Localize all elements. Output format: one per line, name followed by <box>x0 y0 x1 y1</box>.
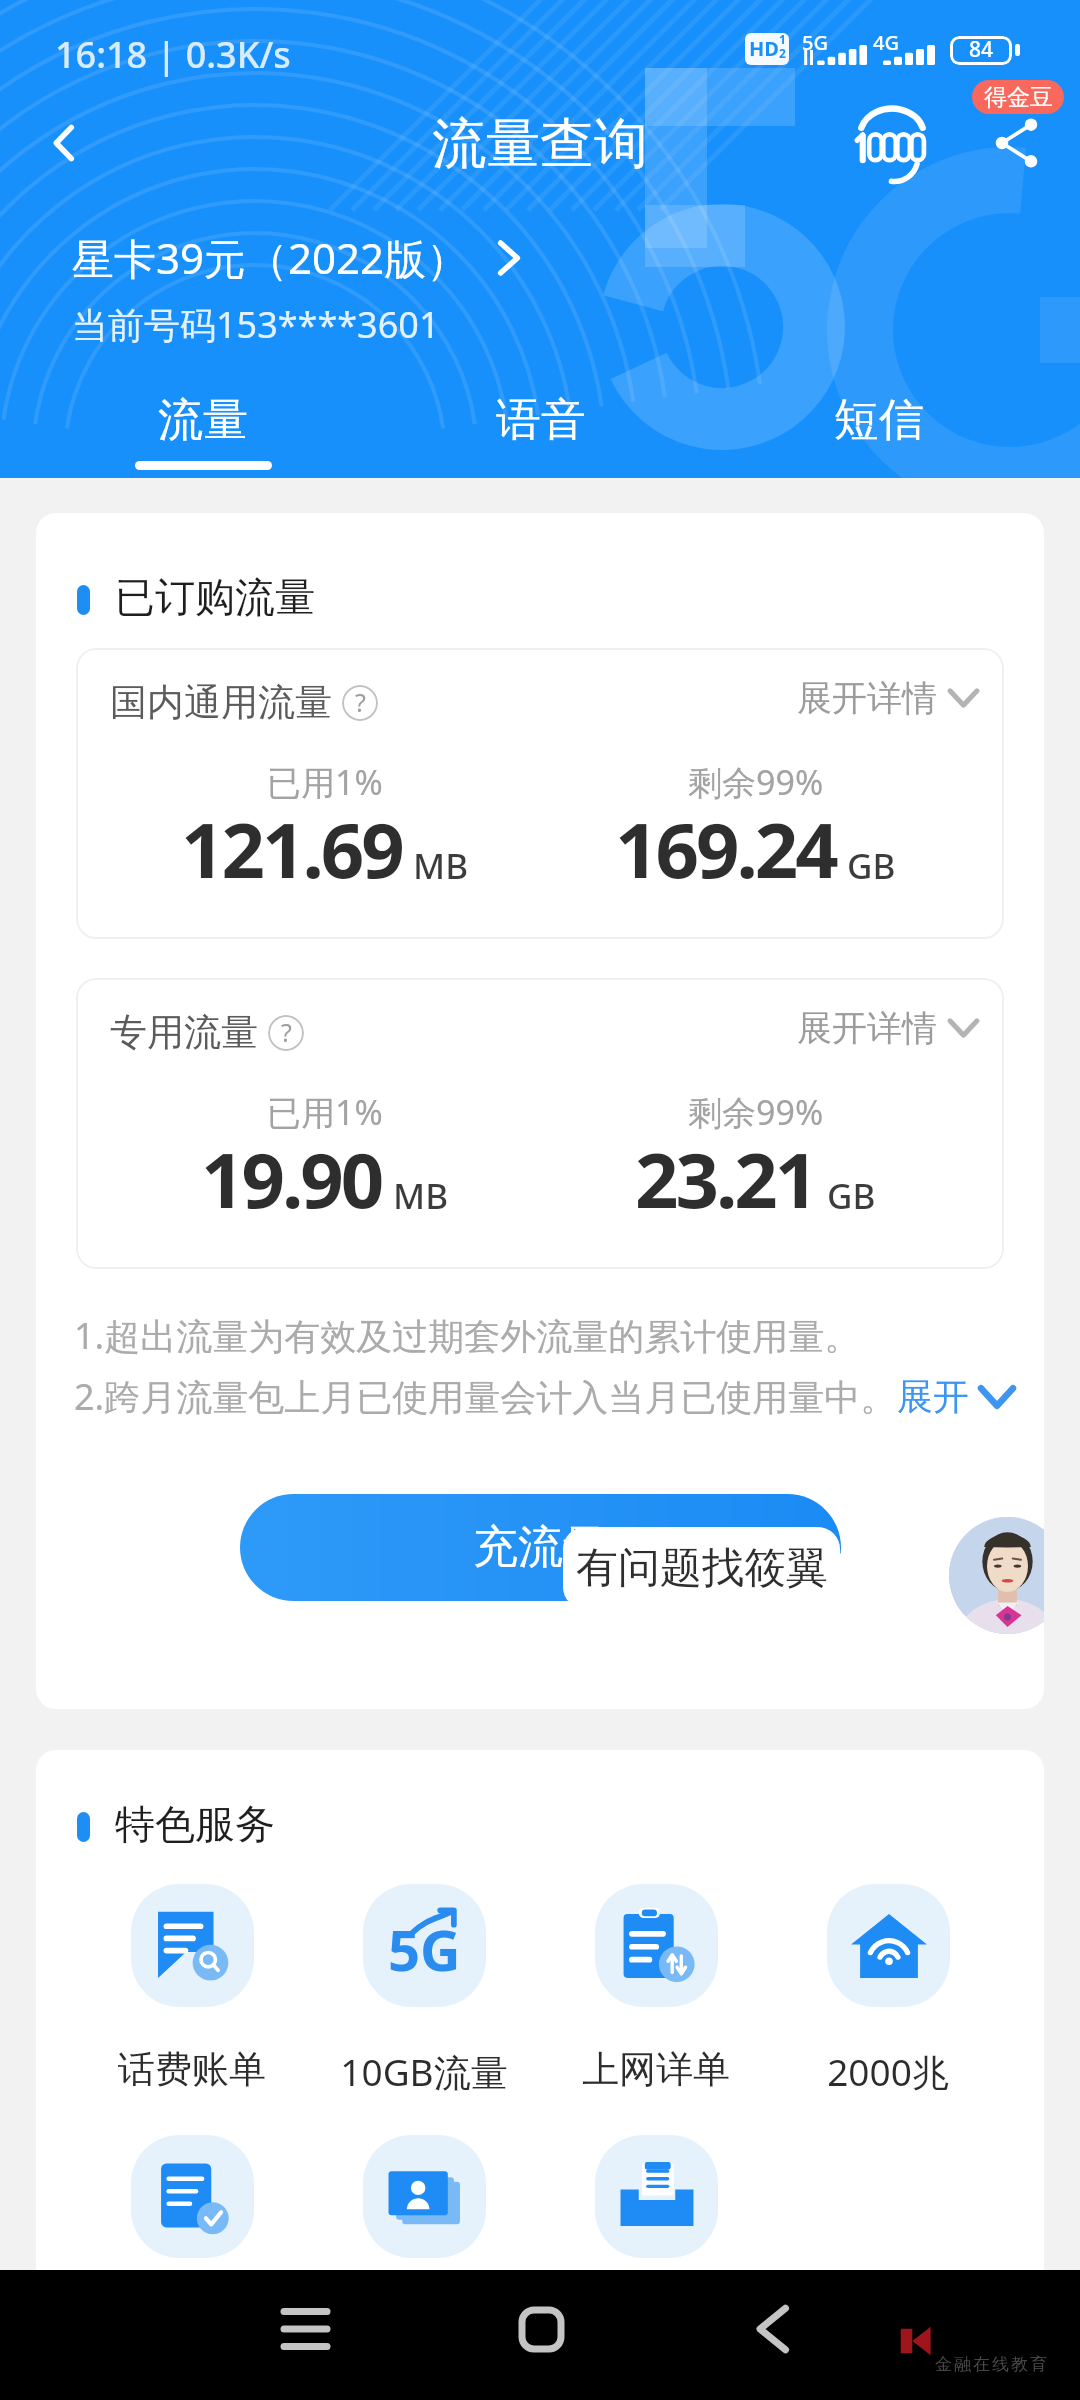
button[interactable]: Share <box>980 106 1054 180</box>
staticText: 专用流量 <box>110 1009 258 1056</box>
button[interactable]: 充流量 <box>240 1494 841 1601</box>
staticText: 金融在线教育 <box>934 2354 1048 2375</box>
button[interactable]: Service <box>595 2135 718 2258</box>
staticText: 已订购流量 <box>115 572 315 622</box>
staticText: 23.21 <box>635 1127 816 1231</box>
staticText: 5G <box>802 29 828 56</box>
staticText: GB <box>827 1172 876 1220</box>
button[interactable]: 展开详情 <box>797 1006 977 1050</box>
staticText: 星卡39元（2022版） <box>72 229 469 286</box>
staticText: 充流量 <box>473 1519 608 1576</box>
staticText: 剩余99% <box>688 1089 824 1135</box>
staticText: 上网详单 <box>582 2046 730 2093</box>
staticText: 1.超出流量为有效及过期套外流量的累计使用量。 <box>74 1311 861 1360</box>
staticText: 4G <box>873 29 899 56</box>
button[interactable]: 上网详单 <box>540 1884 772 2093</box>
staticText: 19.90 <box>201 1127 382 1231</box>
staticText: 1 <box>779 33 786 47</box>
staticText: 121.69 <box>181 797 402 901</box>
button[interactable]: Home <box>501 2289 581 2369</box>
staticText: 169.24 <box>615 797 836 901</box>
button[interactable]: 得金豆 <box>972 80 1064 114</box>
staticText: 16:18 | 0.3K/s <box>55 30 291 79</box>
staticText: 2000兆 <box>827 2046 949 2097</box>
staticText: 展开 <box>897 1374 969 1419</box>
button[interactable]: 短信 <box>759 392 999 472</box>
button[interactable]: Back <box>28 107 100 179</box>
button[interactable]: Recents <box>265 2289 345 2369</box>
button[interactable]: 展开 <box>897 1374 1013 1419</box>
staticText: GB <box>847 842 896 890</box>
button[interactable]: Assistant <box>949 1517 1044 1634</box>
button[interactable]: Service <box>363 2135 486 2258</box>
staticText: 剩余99% <box>688 759 824 805</box>
button[interactable]: 2000兆 <box>772 1884 1004 2097</box>
staticText: 特色服务 <box>115 1799 275 1849</box>
staticText: 当前号码153****3601 <box>72 300 440 349</box>
staticText: 已用1% <box>267 759 383 805</box>
staticText: 流量 <box>158 392 248 449</box>
staticText: ? <box>281 1015 292 1049</box>
button[interactable]: 5G <box>308 1884 540 2097</box>
staticText: 国内通用流量 <box>110 679 332 726</box>
button[interactable]: Service <box>131 2135 254 2258</box>
staticText: 2.跨月流量包上月已使用量会计入当月已使用量中。 <box>74 1372 897 1421</box>
staticText: 话费账单 <box>118 2046 266 2093</box>
button[interactable]: 星卡39元（2022版） <box>72 229 521 286</box>
staticText: 展开详情 <box>797 676 937 720</box>
staticText: ? <box>355 685 366 719</box>
button[interactable]: 有问题找筱翼 <box>563 1527 840 1609</box>
staticText: HD <box>749 35 779 62</box>
staticText: MB <box>393 1172 449 1220</box>
staticText: 2 <box>779 45 786 61</box>
staticText: 84 <box>969 36 994 64</box>
button[interactable]: Customer service 10000 <box>852 105 932 185</box>
button[interactable]: 话费账单 <box>76 1884 308 2093</box>
button[interactable]: 语音 <box>421 392 661 472</box>
staticText: 10GB流量 <box>340 2046 508 2097</box>
staticText: 展开详情 <box>797 1006 937 1050</box>
staticText: 有问题找筱翼 <box>576 1542 828 1595</box>
staticText: 已用1% <box>267 1089 383 1135</box>
staticText: 语音 <box>496 392 586 449</box>
button[interactable]: Back <box>732 2289 812 2369</box>
button[interactable]: 流量 <box>83 392 323 472</box>
button[interactable]: 展开详情 <box>797 676 977 720</box>
staticText: 得金豆 <box>984 83 1053 112</box>
staticText: MB <box>413 842 469 890</box>
staticText: 5G <box>388 1911 461 1987</box>
staticText: 短信 <box>834 392 924 449</box>
staticText: 流量查询 <box>0 110 1080 178</box>
